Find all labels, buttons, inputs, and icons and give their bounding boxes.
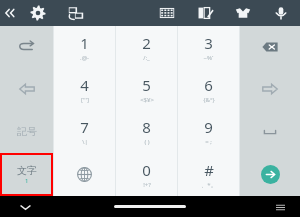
button[interactable]: Notes <box>186 0 224 26</box>
staticText: /:_ <box>143 54 150 62</box>
staticText: 2 <box>142 33 151 53</box>
button[interactable]: # <box>178 153 239 196</box>
staticText: 0 <box>142 160 151 180</box>
button[interactable]: 9 <box>178 110 239 153</box>
button[interactable]: Switch input method <box>57 0 95 26</box>
staticText: .@- <box>80 54 89 62</box>
staticText: 9 <box>204 117 213 137</box>
button[interactable]: Undo <box>0 26 53 68</box>
button[interactable]: 4 <box>54 68 115 110</box>
button[interactable]: 3 <box>178 26 239 68</box>
staticText: ~%´ <box>203 54 214 62</box>
button[interactable]: Cursor right <box>240 68 300 110</box>
button[interactable]: 0 <box>116 153 177 196</box>
staticText: = ; <box>205 138 212 146</box>
staticText: 記号 <box>17 125 37 138</box>
staticText: 8 <box>142 117 151 137</box>
staticText: ( ) <box>144 138 150 146</box>
staticText: 7 <box>80 117 89 137</box>
button[interactable]: Keyboard switcher <box>274 201 286 213</box>
staticText: # <box>204 160 214 180</box>
staticText: {&°} <box>203 96 215 104</box>
button[interactable]: Space <box>240 110 300 153</box>
button[interactable]: Settings <box>19 0 57 26</box>
staticText: 4 <box>80 75 89 95</box>
staticText: !+? <box>143 181 151 189</box>
staticText: 文字 <box>17 164 37 177</box>
button[interactable]: 8 <box>116 110 177 153</box>
staticText: 、*。 <box>201 181 217 189</box>
button[interactable]: Cursor left <box>0 68 53 110</box>
button[interactable]: 2 <box>116 26 177 68</box>
staticText: <$¥> <box>140 96 154 104</box>
button[interactable]: 記号 <box>0 110 53 153</box>
staticText: \| <box>82 138 88 146</box>
staticText: 5 <box>142 75 151 95</box>
button[interactable]: Clipboard <box>224 0 262 26</box>
button[interactable]: 6 <box>178 68 239 110</box>
button[interactable]: Keyboard layout <box>148 0 186 26</box>
staticText: 1 <box>25 177 29 185</box>
staticText: 6 <box>204 75 213 95</box>
button[interactable]: Change language <box>54 153 115 196</box>
button[interactable]: Voice input <box>262 0 300 26</box>
staticText: ['''] <box>81 96 89 104</box>
button[interactable] <box>114 205 186 208</box>
button[interactable]: Back <box>18 200 32 214</box>
button[interactable]: Backspace <box>240 26 300 68</box>
button[interactable]: 7 <box>54 110 115 153</box>
button[interactable]: 5 <box>116 68 177 110</box>
staticText: 3 <box>204 33 213 53</box>
button[interactable]: Collapse keyboard <box>0 0 19 26</box>
button[interactable]: Send <box>240 153 300 196</box>
button[interactable]: 文字 <box>0 153 53 196</box>
button[interactable]: 1 <box>54 26 115 68</box>
staticText: 1 <box>80 33 89 53</box>
